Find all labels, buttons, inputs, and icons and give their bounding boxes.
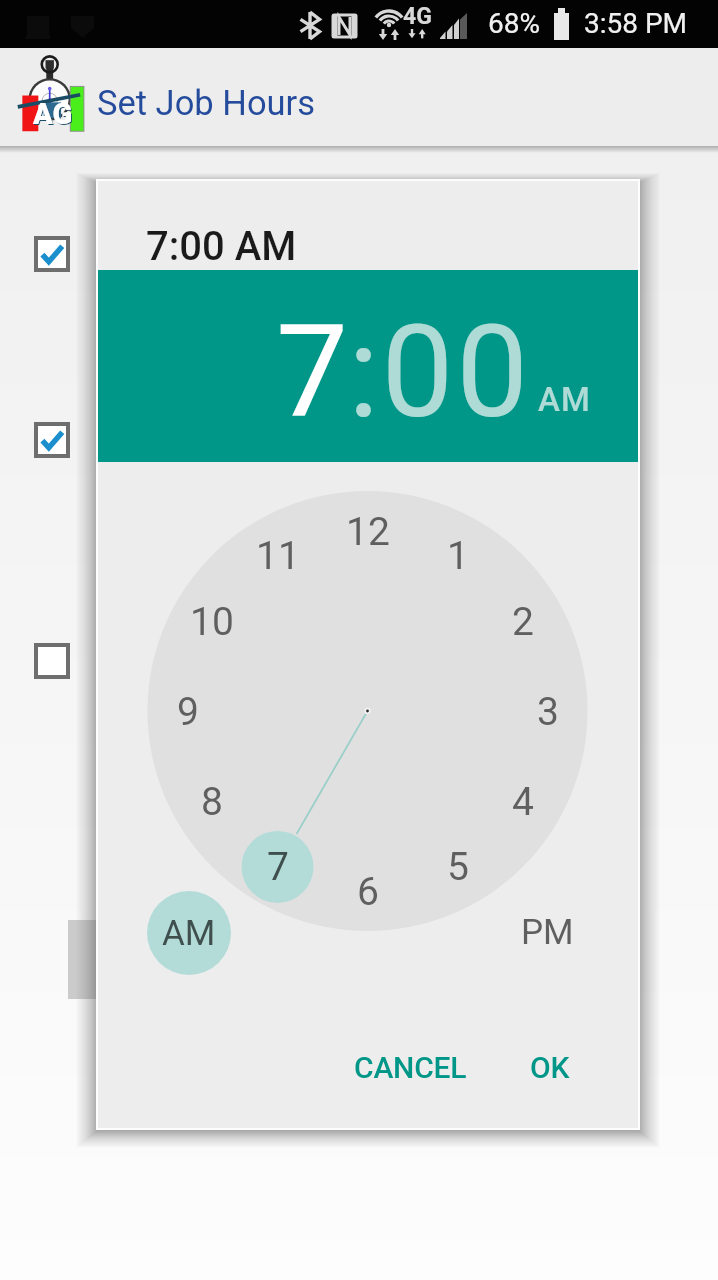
staticText: 3 [537,689,559,735]
button[interactable]: 7 [98,270,638,462]
button[interactable]: 8 [176,766,248,838]
staticText: OK [530,1050,570,1085]
staticText: 4 [512,779,534,825]
staticText: 8 [201,779,223,825]
staticText: 3:58 PM [584,7,688,40]
button[interactable]: 5 [422,831,494,903]
button[interactable]: Unchecked [36,645,68,677]
staticText: 10 [190,599,234,645]
staticText: 1 [447,533,469,579]
button[interactable]: 11 [242,520,314,592]
staticText: AG [34,98,74,132]
staticText: CANCEL [354,1050,467,1085]
button[interactable]: 4 [487,766,559,838]
button[interactable]: Checked [36,424,68,456]
staticText: 4G [403,3,432,30]
staticText: 2 [512,599,534,645]
other: App icon [14,56,90,132]
staticText: 68% [488,7,540,40]
staticText: 9 [177,689,199,735]
button[interactable]: CANCEL [341,1039,480,1095]
button[interactable]: 7 [242,831,314,903]
button[interactable]: 1 [422,520,494,592]
button[interactable] [68,920,138,999]
button[interactable]: Checked [36,238,68,270]
staticText: 5 [447,844,469,890]
button[interactable]: 10 [176,586,248,658]
staticText: :00 [348,297,531,447]
button[interactable]: 6 [332,856,404,928]
staticText: 7:00 AM [146,223,297,270]
button[interactable]: 3 [512,676,584,748]
staticText: AM [162,913,216,954]
staticText: 7 [276,297,348,447]
button[interactable]: 12 [332,496,404,568]
button[interactable]: 9 [152,676,224,748]
button[interactable]: OK [516,1039,584,1095]
staticText: PM [521,912,574,953]
staticText: AM [538,380,591,419]
staticText: 7 [267,844,289,890]
staticText: 12 [346,509,390,555]
button[interactable]: 2 [487,586,559,658]
staticText: AG [33,97,73,131]
button[interactable]: PM [505,890,589,974]
button[interactable]: AM [147,891,231,975]
staticText: 11 [256,533,300,579]
staticText: 6 [357,869,379,915]
staticText: Set Job Hours [97,83,316,123]
